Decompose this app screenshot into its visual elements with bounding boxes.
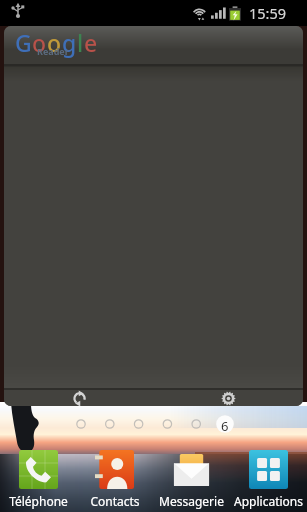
button[interactable]: Settings	[215, 390, 241, 406]
button[interactable]: Applications	[230, 450, 307, 509]
button[interactable]: Téléphone	[0, 450, 76, 509]
button[interactable]: Refresh	[66, 390, 92, 406]
button[interactable]: Contacts	[76, 450, 153, 509]
staticText: 15:59	[249, 3, 287, 23]
staticText: g	[62, 27, 77, 58]
staticText: Téléphone	[9, 493, 68, 509]
staticText: o	[47, 27, 62, 58]
staticText: o	[32, 27, 47, 58]
staticText: Messagerie	[159, 493, 224, 509]
button[interactable]: Messagerie	[153, 450, 230, 509]
staticText: l	[77, 27, 84, 58]
staticText: Reader	[37, 45, 69, 57]
button[interactable]: G	[4, 26, 303, 406]
staticText: Contacts	[90, 493, 140, 509]
staticText: Applications	[234, 493, 303, 509]
staticText: e	[84, 27, 98, 58]
staticText: 6	[221, 417, 229, 435]
staticText: G	[15, 27, 32, 58]
